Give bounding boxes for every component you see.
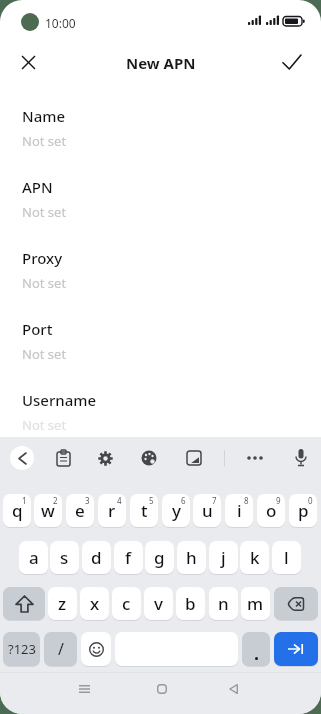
button[interactable]: c xyxy=(112,587,141,620)
staticText: 6 xyxy=(181,495,186,506)
staticText: i xyxy=(237,499,242,522)
button[interactable]: Proxy xyxy=(0,248,321,308)
staticText: e xyxy=(75,499,85,522)
staticText: APN xyxy=(22,177,53,197)
button[interactable]: e xyxy=(66,494,94,527)
staticText: Not set xyxy=(22,416,67,434)
staticText: p xyxy=(298,499,309,522)
button[interactable]: q xyxy=(3,494,31,527)
staticText: h xyxy=(186,546,197,569)
button[interactable]: a xyxy=(19,541,48,574)
staticText: Port xyxy=(22,319,53,339)
button[interactable]: y xyxy=(162,494,190,527)
staticText: Not set xyxy=(22,132,67,150)
staticText: Proxy xyxy=(22,248,63,268)
staticText: w xyxy=(41,499,55,522)
button[interactable]: o xyxy=(257,494,285,527)
staticText: 10:00 xyxy=(45,15,76,31)
button[interactable]: k xyxy=(240,541,269,574)
staticText: 7 xyxy=(212,495,217,506)
button[interactable] xyxy=(81,632,111,666)
button[interactable] xyxy=(148,676,176,702)
staticText: f xyxy=(125,546,132,569)
button[interactable]: Name xyxy=(0,106,321,166)
button[interactable]: s xyxy=(50,541,79,574)
button[interactable]: ?123 xyxy=(3,632,40,666)
staticText: 5 xyxy=(149,495,154,506)
button[interactable]: / xyxy=(44,632,77,666)
staticText: g xyxy=(154,546,165,569)
button[interactable] xyxy=(140,449,158,467)
staticText: j xyxy=(221,546,226,569)
staticText: New APN xyxy=(126,53,196,73)
button[interactable]: r xyxy=(98,494,126,527)
staticText: m xyxy=(247,592,264,615)
button[interactable]: j xyxy=(209,541,238,574)
staticText: u xyxy=(202,499,213,522)
button[interactable]: d xyxy=(82,541,111,574)
staticText: Not set xyxy=(22,274,67,292)
staticText: k xyxy=(250,546,260,569)
staticText: Username xyxy=(22,390,97,410)
button[interactable]: APN xyxy=(0,177,321,237)
staticText: 8 xyxy=(244,495,249,506)
button[interactable]: Username xyxy=(0,390,321,450)
button[interactable] xyxy=(14,48,42,76)
staticText: a xyxy=(29,546,39,569)
button[interactable]: l xyxy=(272,541,301,574)
button[interactable]: x xyxy=(80,587,109,620)
staticText: 0 xyxy=(308,495,313,506)
staticText: 1 xyxy=(22,495,27,506)
button[interactable]: b xyxy=(176,587,205,620)
button[interactable]: Port xyxy=(0,319,321,379)
staticText: 2 xyxy=(53,495,58,506)
button[interactable]: n xyxy=(209,587,238,620)
staticText: c xyxy=(122,592,131,615)
button[interactable] xyxy=(10,446,34,470)
button[interactable] xyxy=(274,632,318,666)
button[interactable] xyxy=(185,449,203,467)
button[interactable] xyxy=(244,449,266,467)
staticText: l xyxy=(284,546,289,569)
staticText: Not set xyxy=(22,203,67,221)
staticText: 3 xyxy=(85,495,90,506)
button[interactable]: i xyxy=(225,494,253,527)
staticText: s xyxy=(60,546,69,569)
button[interactable]: p xyxy=(289,494,317,527)
staticText: d xyxy=(91,546,102,569)
button[interactable] xyxy=(242,632,270,666)
button[interactable] xyxy=(219,676,247,702)
staticText: t xyxy=(141,499,148,522)
staticText: r xyxy=(108,499,116,522)
staticText: 9 xyxy=(276,495,281,506)
button[interactable]: m xyxy=(241,587,270,620)
staticText: ?123 xyxy=(8,640,36,658)
button[interactable] xyxy=(292,447,310,469)
staticText: v xyxy=(154,592,163,615)
button[interactable]: u xyxy=(193,494,221,527)
button[interactable] xyxy=(54,449,72,467)
button[interactable] xyxy=(96,449,114,467)
button[interactable]: w xyxy=(34,494,62,527)
staticText: Not set xyxy=(22,345,67,363)
staticText: y xyxy=(172,499,181,522)
button[interactable] xyxy=(3,587,45,620)
button[interactable] xyxy=(278,48,306,76)
button[interactable]: t xyxy=(130,494,158,527)
staticText: o xyxy=(266,499,277,522)
button[interactable]: h xyxy=(177,541,206,574)
button[interactable]: f xyxy=(114,541,143,574)
staticText: x xyxy=(90,592,100,615)
button[interactable] xyxy=(274,587,318,620)
staticText: Name xyxy=(22,106,66,126)
button[interactable] xyxy=(70,676,98,702)
staticText: b xyxy=(185,592,196,615)
button[interactable]: z xyxy=(48,587,77,620)
staticText: 4 xyxy=(117,495,122,506)
staticText: q xyxy=(12,499,23,522)
staticText: n xyxy=(218,592,229,615)
staticText: z xyxy=(58,592,67,615)
button[interactable]: v xyxy=(144,587,173,620)
button[interactable]: g xyxy=(145,541,174,574)
